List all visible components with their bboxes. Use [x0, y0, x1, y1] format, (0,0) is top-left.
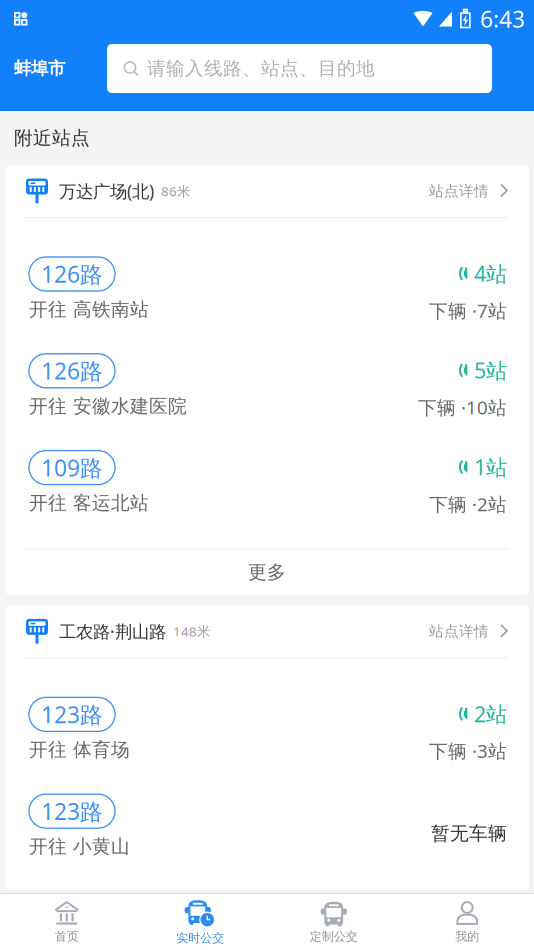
staticText: 站点详情 [429, 622, 489, 640]
staticText: 123路 [41, 796, 103, 826]
button[interactable]: 首页 [0, 894, 133, 950]
button[interactable]: 万达广场(北) [5, 165, 529, 217]
button[interactable]: 126路 [5, 238, 529, 335]
staticText: 开往 高铁南站 [29, 298, 149, 321]
staticText: 开往 体育场 [29, 738, 130, 761]
staticText: 148米 [173, 622, 210, 640]
button[interactable]: 123路 [5, 775, 529, 870]
staticText: 109路 [41, 452, 103, 483]
button[interactable]: 蚌埠市 [14, 52, 65, 85]
staticText: 6:43 [480, 4, 525, 34]
button[interactable]: 实时公交 [133, 893, 267, 950]
button[interactable]: 请输入线路、站点、目的地 [107, 44, 492, 93]
staticText: 工农路·荆山路 [59, 620, 166, 643]
button[interactable]: 工农路·荆山路 [5, 605, 529, 657]
button[interactable]: 定制公交 [267, 894, 400, 950]
staticText: 2站 [474, 700, 507, 728]
staticText: 开往 客运北站 [29, 492, 149, 514]
staticText: 126路 [41, 356, 103, 386]
staticText: 86米 [161, 182, 190, 200]
staticText: 站点详情 [429, 182, 489, 200]
staticText: 4站 [474, 259, 507, 288]
staticText: 1站 [474, 453, 507, 481]
staticText: 万达广场(北) [59, 179, 154, 202]
button[interactable]: 123路 [5, 678, 529, 775]
staticText: 定制公交 [310, 929, 358, 944]
staticText: 我的 [455, 929, 479, 944]
staticText: 123路 [41, 699, 103, 729]
staticText: 暂无车辆 [431, 822, 507, 845]
staticText: 5站 [474, 356, 507, 384]
staticText: 实时公交 [176, 931, 224, 945]
button[interactable]: 更多 [5, 549, 529, 595]
staticText: 首页 [55, 929, 79, 944]
staticText: 下辆 ·10站 [418, 395, 507, 420]
staticText: 请输入线路、站点、目的地 [147, 57, 375, 80]
button[interactable]: 126路 [5, 335, 529, 432]
staticText: 更多 [248, 561, 286, 584]
staticText: 下辆 ·2站 [429, 492, 507, 516]
staticText: 开往 小黄山 [29, 835, 130, 858]
button[interactable]: 109路 [5, 432, 529, 528]
staticText: 下辆 ·3站 [429, 738, 507, 763]
button[interactable]: 我的 [400, 894, 534, 950]
staticText: 下辆 ·7站 [429, 298, 507, 323]
staticText: 附近站点 [14, 126, 90, 149]
staticText: 蚌埠市 [14, 58, 65, 79]
staticText: 126路 [41, 259, 103, 289]
staticText: 开往 安徽水建医院 [29, 395, 187, 418]
